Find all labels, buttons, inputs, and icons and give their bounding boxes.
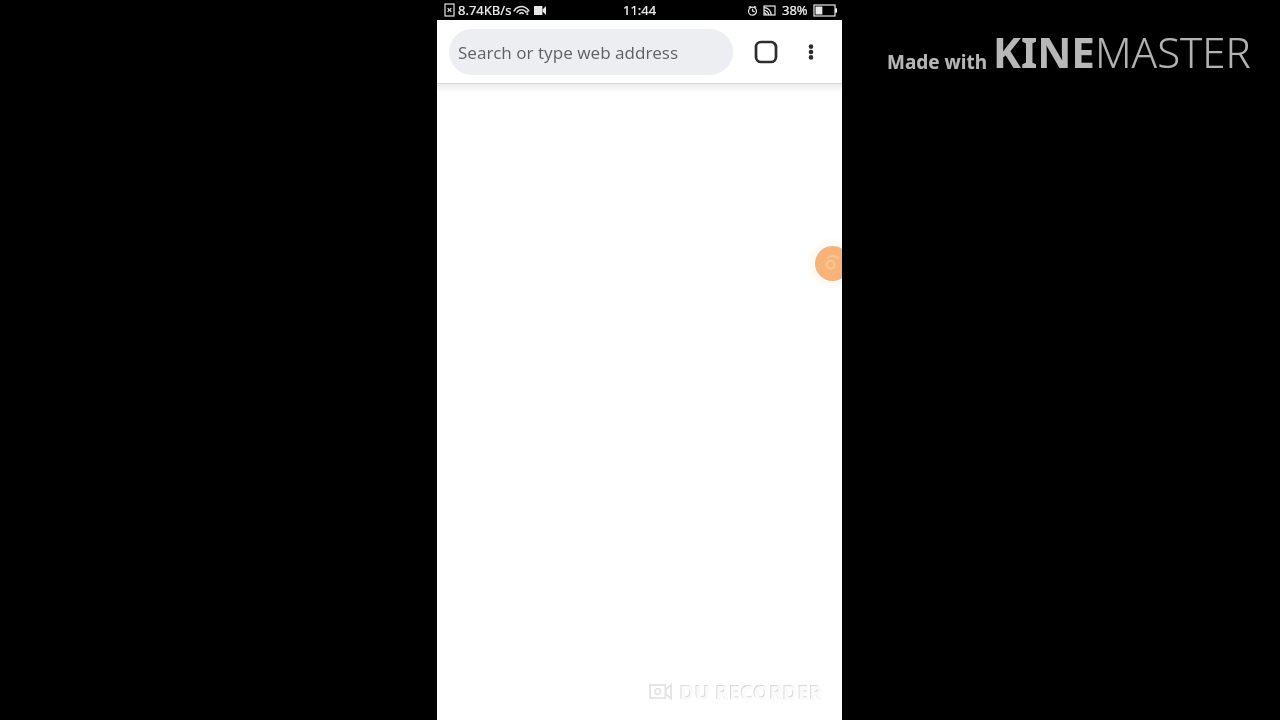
staticText: 38% [782, 1, 808, 19]
button[interactable]: Search or type web address [449, 29, 733, 75]
staticText: 8.74KB/s [458, 1, 512, 19]
staticText: MASTER [1095, 23, 1251, 80]
staticText: Search or type web address [458, 41, 679, 64]
button[interactable]: Screen recorder [815, 246, 842, 281]
staticText: 11:44 [623, 1, 657, 19]
button[interactable]: Tabs [746, 32, 786, 72]
staticText: Made with [887, 49, 993, 75]
button[interactable]: More options [790, 32, 830, 72]
staticText: KINE [993, 23, 1095, 80]
staticText: DU RECORDER [680, 679, 823, 706]
staticText: DU RECORDER [679, 678, 822, 705]
